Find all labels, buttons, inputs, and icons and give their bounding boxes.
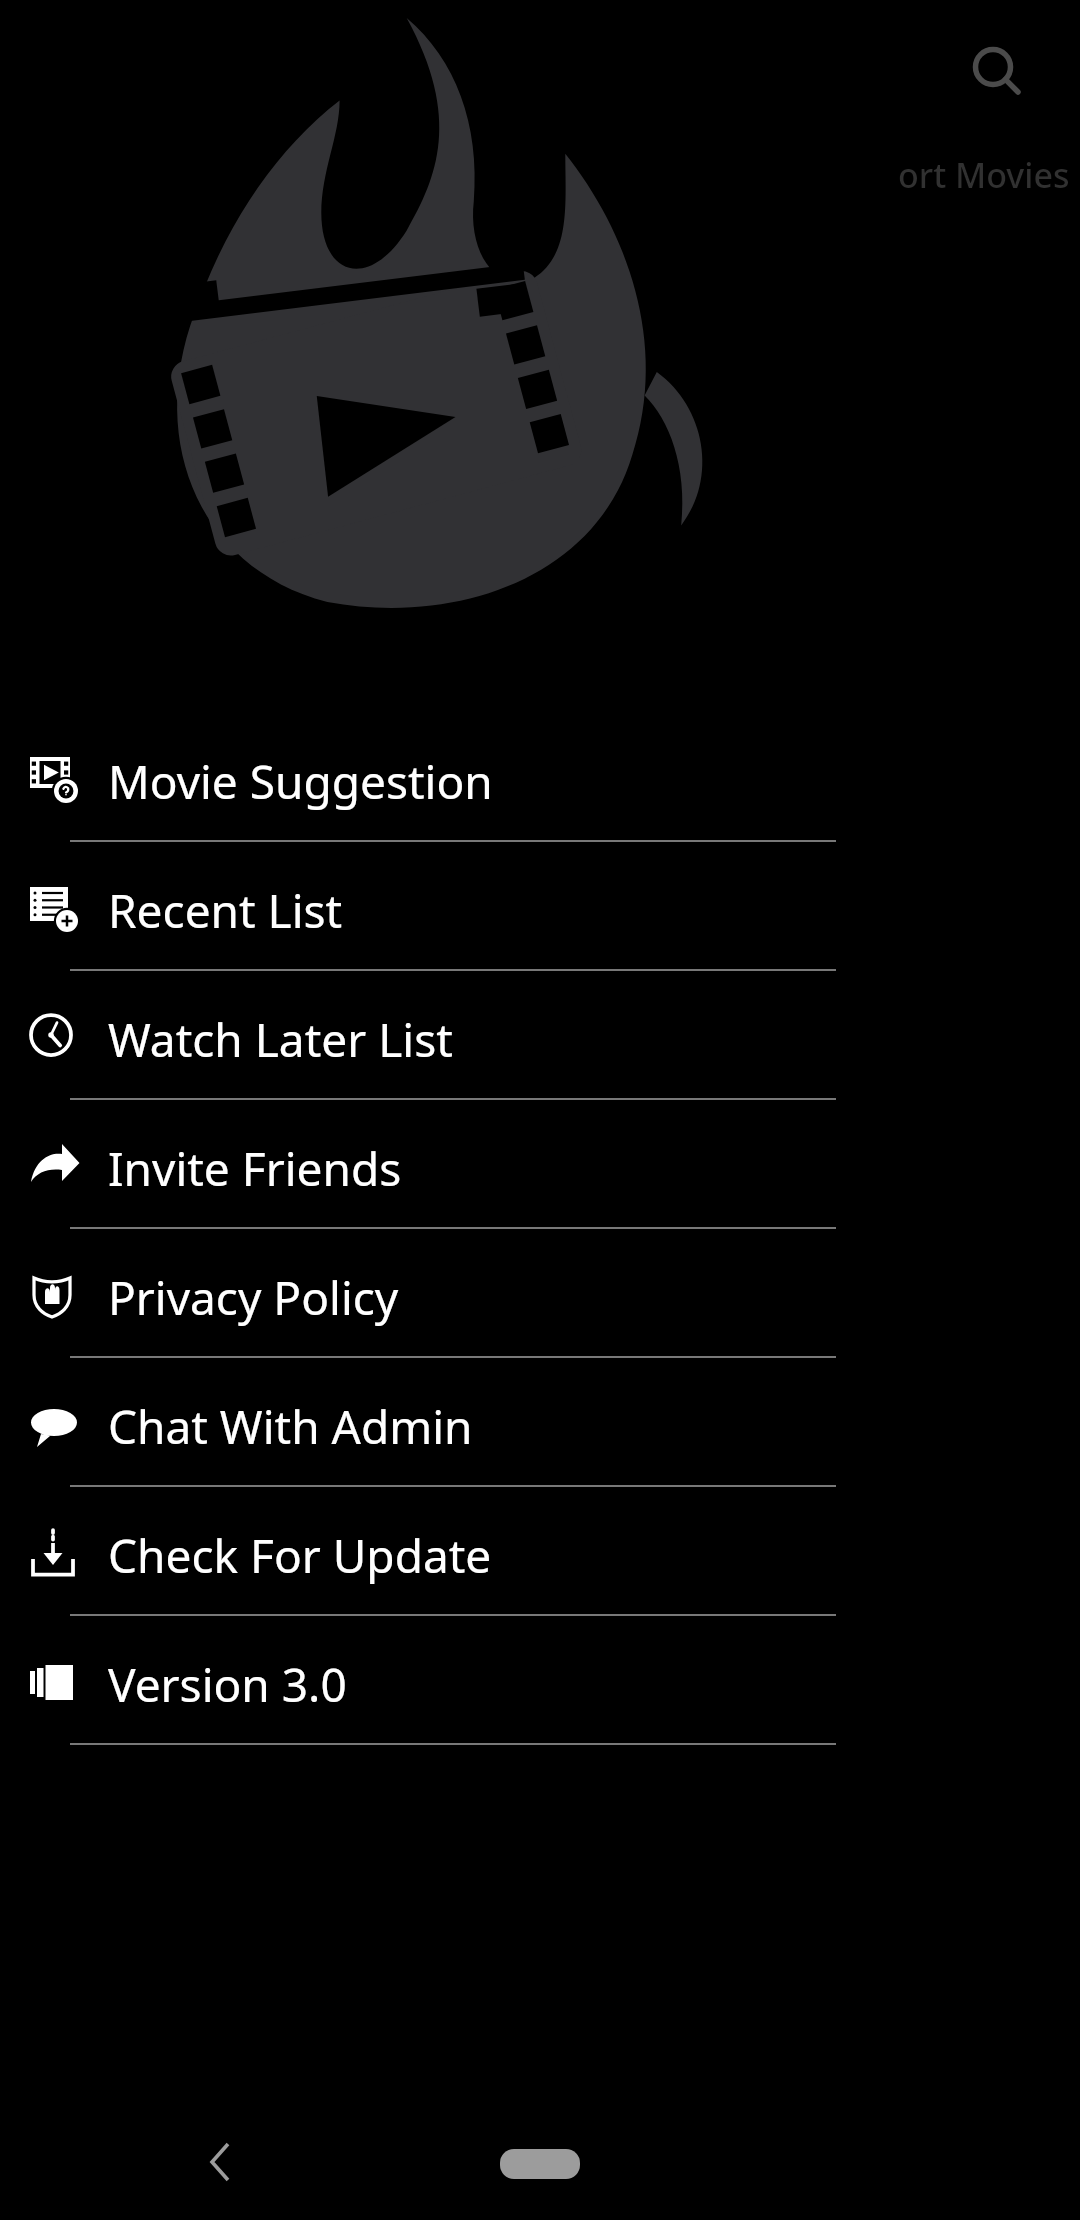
button[interactable]: Chat With Admin	[0, 1359, 1080, 1488]
staticText: Movie Suggestion	[108, 750, 493, 813]
button[interactable]: Search	[960, 34, 1026, 100]
button[interactable]: Invite Friends	[0, 1101, 1080, 1230]
button[interactable]: Watch Later List	[0, 972, 1080, 1101]
staticText: Invite Friends	[108, 1137, 402, 1200]
button[interactable]: Back	[180, 2122, 260, 2202]
staticText: Recent List	[108, 879, 343, 942]
button[interactable]: Movie Suggestion	[0, 714, 1080, 843]
button[interactable]: Privacy Policy	[0, 1230, 1080, 1359]
button[interactable]: Version 3.0	[0, 1617, 1080, 1746]
staticText: Chat With Admin	[108, 1395, 473, 1458]
staticText: Version 3.0	[108, 1653, 347, 1716]
staticText: ort Movies	[898, 152, 1070, 198]
staticText: Check For Update	[108, 1524, 492, 1587]
button[interactable]: Recent List	[0, 843, 1080, 972]
button[interactable]: Home	[500, 2149, 580, 2179]
staticText: Privacy Policy	[108, 1266, 399, 1329]
button[interactable]: Check For Update	[0, 1488, 1080, 1617]
staticText: Watch Later List	[108, 1008, 453, 1071]
